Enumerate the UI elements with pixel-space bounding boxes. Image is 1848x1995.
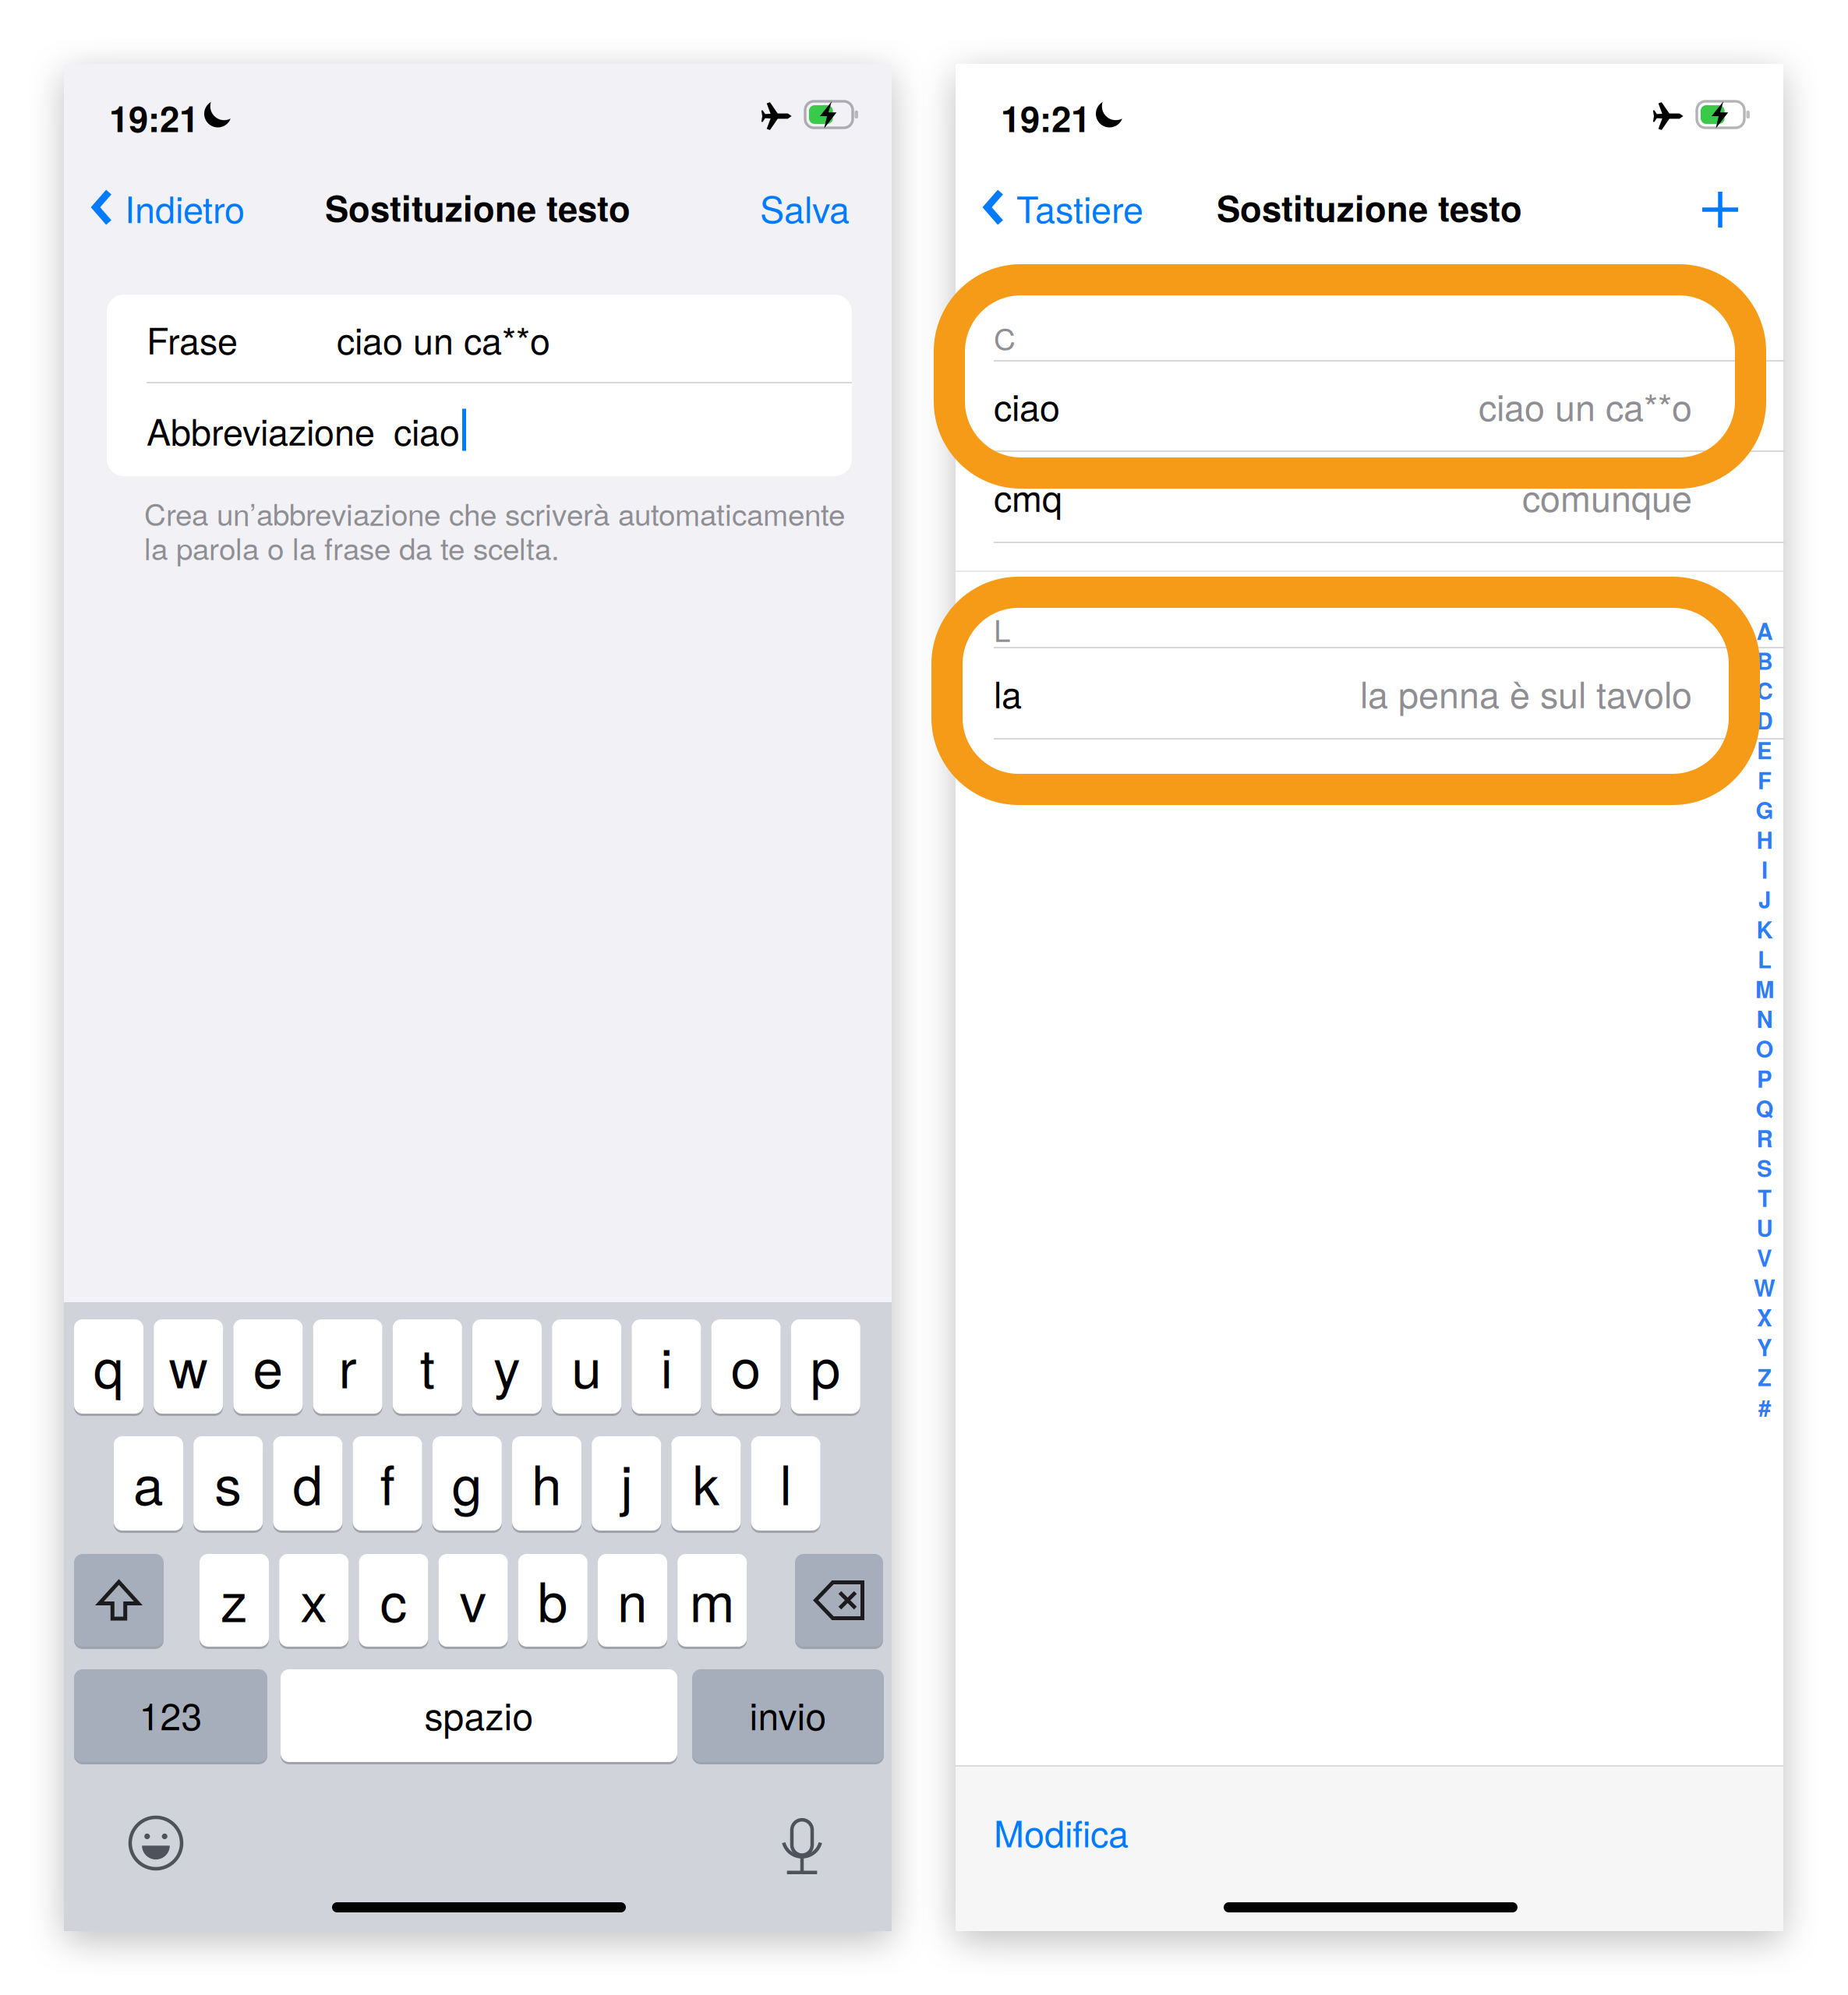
button[interactable]: Vai alla sezione B [1747,645,1782,675]
button[interactable]: w [64,1302,133,1396]
staticText: x [300,1560,328,1637]
button[interactable]: Vai alla sezione N [1747,1004,1782,1034]
button[interactable]: Vai alla sezione U [1747,1213,1782,1242]
staticText: L [1758,942,1772,975]
staticText: o [731,1326,761,1404]
staticText: X [1757,1301,1772,1333]
button[interactable]: u [64,1302,133,1396]
button[interactable]: q [64,1302,133,1396]
button[interactable]: e [64,1302,133,1396]
button[interactable]: Frase [107,295,852,383]
button[interactable]: Cancella [64,1302,152,1395]
button[interactable]: Vai alla sezione I [1747,854,1782,884]
staticText: ciao un ca**o [337,313,550,365]
button[interactable]: g [64,1302,133,1396]
button[interactable]: h [64,1302,133,1396]
button[interactable]: ciao [956,360,1783,450]
button[interactable]: t [64,1302,133,1396]
button[interactable]: c [64,1302,133,1395]
staticText: V [1757,1241,1772,1274]
button[interactable]: f [64,1302,133,1396]
staticText: T [1758,1181,1772,1214]
button[interactable]: l [64,1302,133,1396]
button[interactable]: o [64,1302,133,1396]
staticText: Indietro [125,181,245,233]
button[interactable]: Tastiere [956,164,1143,250]
staticText: F [1758,763,1772,796]
staticText: spazio [424,1687,534,1741]
staticText: N [1756,1002,1773,1035]
button[interactable]: 123 [64,1302,257,1395]
button[interactable]: Vai alla sezione J [1747,884,1782,914]
staticText: j [621,1443,632,1521]
staticText: n [617,1560,648,1637]
button[interactable]: Vai alla sezione E [1747,735,1782,765]
button[interactable]: Aggiungi [1702,175,1783,245]
button[interactable]: x [64,1302,133,1395]
button[interactable]: Maiuscole [64,1302,154,1395]
button[interactable]: Vai alla sezione S [1747,1153,1782,1183]
staticText: b [538,1560,568,1637]
button[interactable]: spazio [64,1302,461,1395]
button[interactable]: v [64,1302,133,1395]
staticText: 19:21 [1001,92,1090,143]
staticText: v [460,1560,487,1637]
button[interactable]: Vai alla sezione W [1747,1272,1782,1302]
staticText: # [1758,1390,1771,1423]
button[interactable]: y [64,1302,133,1396]
button[interactable]: j [64,1302,133,1396]
button[interactable]: Vai alla sezione Q [1747,1093,1782,1123]
button[interactable]: Salva [760,164,892,250]
staticText: p [810,1326,841,1404]
button[interactable]: Vai alla sezione D [1747,705,1782,735]
button[interactable]: Vai alla sezione L [1747,944,1782,974]
button[interactable]: s [64,1302,133,1396]
button[interactable]: Modifica [994,1796,1144,1867]
staticText: d [293,1443,323,1521]
staticText: ciao [994,379,1060,431]
button[interactable]: i [64,1302,133,1396]
staticText: k [692,1443,720,1521]
button[interactable]: invio [64,1302,256,1395]
button[interactable]: k [64,1302,133,1396]
button[interactable]: b [64,1302,133,1395]
staticText: c [380,1560,407,1637]
button[interactable]: Abbreviazione [107,383,852,476]
staticText: Q [1756,1092,1774,1124]
staticText: D [1756,704,1773,736]
button[interactable]: Vai alla sezione F [1747,765,1782,795]
button[interactable]: n [64,1302,133,1395]
button[interactable]: Vai alla sezione A [1747,616,1782,645]
staticText: L [994,607,1010,650]
staticText: Tastiere [1016,181,1143,233]
button[interactable]: Indietro [64,164,245,250]
button[interactable]: d [64,1302,133,1396]
button[interactable]: Vai alla sezione V [1747,1242,1782,1272]
button[interactable]: Vai alla sezione P [1747,1063,1782,1093]
button[interactable]: Vai alla sezione R [1747,1123,1782,1153]
button[interactable]: Emoji [130,1817,182,1869]
button[interactable]: Vai alla sezione K [1747,914,1782,944]
staticText: t [420,1326,435,1404]
button[interactable]: z [64,1302,133,1395]
button[interactable]: Vai alla sezione G [1747,795,1782,825]
button[interactable]: r [64,1302,133,1396]
button[interactable]: m [64,1302,133,1395]
button[interactable]: la [956,647,1783,738]
button[interactable]: Vai alla sezione O [1747,1034,1782,1063]
staticText: W [1754,1271,1776,1304]
button[interactable]: p [64,1302,133,1396]
button[interactable]: Vai alla sezione M [1747,974,1782,1004]
button[interactable]: Vai alla sezione T [1747,1183,1782,1213]
button[interactable]: Vai alla sezione H [1747,825,1782,854]
button[interactable]: cmq [956,450,1783,542]
staticText: O [1756,1032,1774,1065]
staticText: 19:21 [109,92,199,143]
button[interactable]: Vai alla sezione X [1747,1302,1782,1332]
button[interactable]: Vai alla sezione Y [1747,1332,1782,1362]
button[interactable]: Vai alla sezione Z [1747,1362,1782,1392]
button[interactable]: Vai alla sezione # [1747,1392,1782,1422]
button[interactable]: Dettatura [769,1814,835,1880]
button[interactable]: Vai alla sezione C [1747,675,1782,705]
button[interactable]: a [64,1302,133,1396]
